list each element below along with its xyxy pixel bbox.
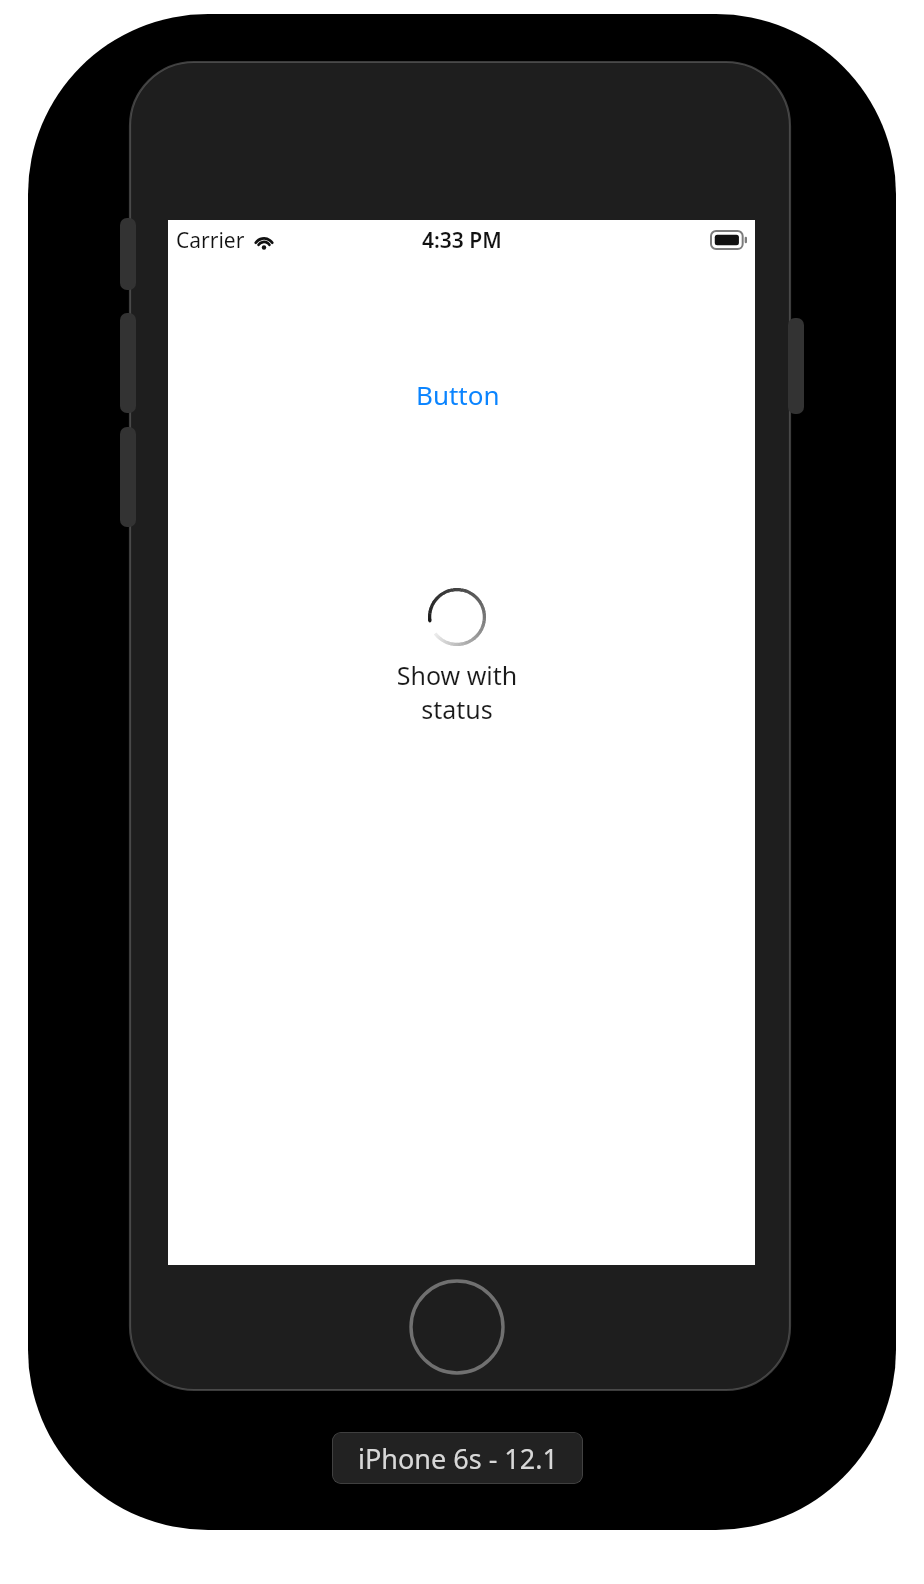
staticText: 4:33 PM <box>422 226 502 255</box>
button[interactable]: iPhone 6s - 12.1 <box>332 1432 583 1484</box>
staticText: iPhone 6s - 12.1 <box>358 1440 558 1477</box>
staticText: Show with status <box>372 658 542 726</box>
button[interactable]: Button <box>396 372 520 416</box>
staticText: Button <box>416 377 500 412</box>
staticText: Carrier <box>176 226 245 255</box>
